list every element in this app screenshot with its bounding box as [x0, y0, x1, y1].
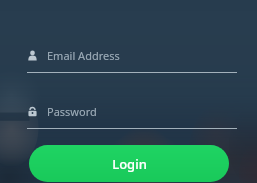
button[interactable]: Password — [0, 104, 257, 129]
staticText: Email Address — [47, 48, 120, 63]
staticText: Login — [112, 155, 147, 173]
staticText: Password — [47, 104, 97, 119]
button[interactable]: Email Address — [0, 48, 257, 73]
button[interactable]: Login — [29, 145, 229, 182]
